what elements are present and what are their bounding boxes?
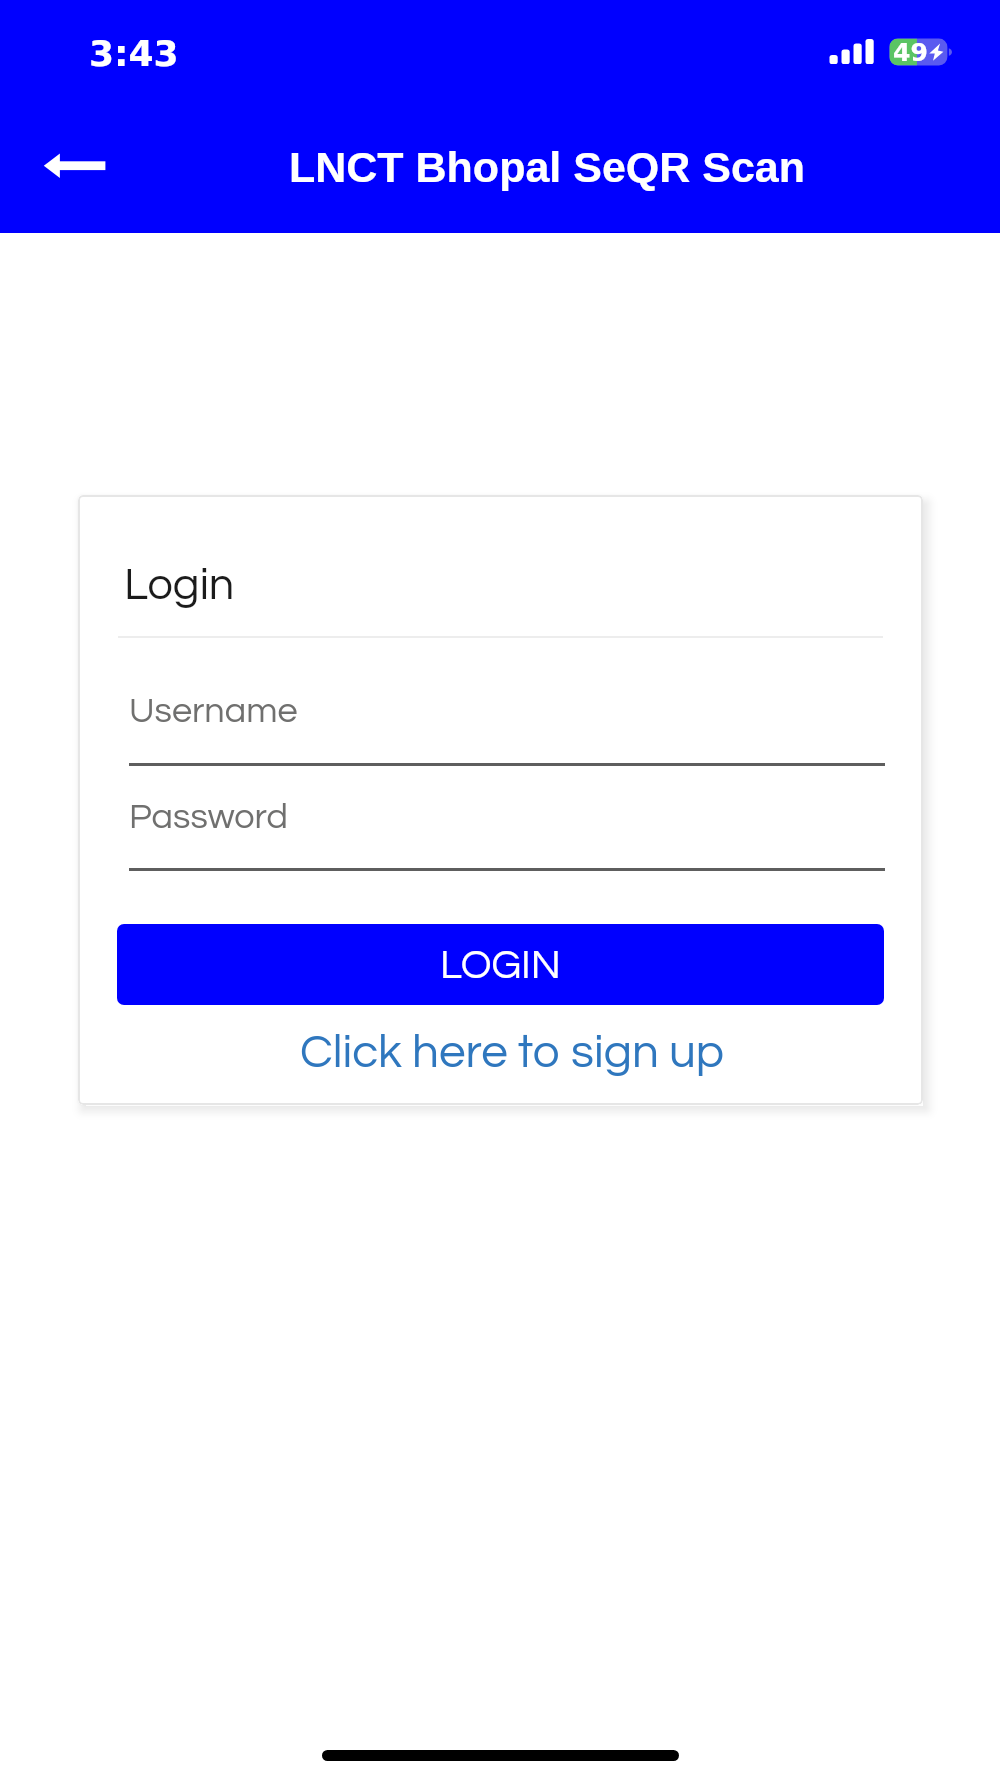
button[interactable]: LOGIN bbox=[117, 924, 884, 1005]
staticText: LOGIN bbox=[440, 944, 561, 986]
button[interactable]: Back bbox=[14, 126, 124, 206]
staticText: 49 bbox=[893, 38, 928, 67]
staticText: LNCT Bhopal SeQR Scan bbox=[94, 143, 1000, 191]
staticText: Click here to sign up bbox=[300, 1028, 725, 1077]
staticText: Username bbox=[129, 692, 298, 729]
button[interactable]: Click here to sign up bbox=[126, 1016, 899, 1088]
staticText: Login bbox=[124, 562, 235, 608]
staticText: 3:43 bbox=[89, 33, 179, 75]
staticText: Password bbox=[129, 798, 288, 835]
